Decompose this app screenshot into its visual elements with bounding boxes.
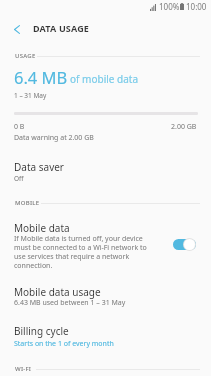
staticText: Data saver [14, 160, 64, 174]
staticText: Data warning at 2.00 GB [14, 133, 94, 143]
staticText: 100% [159, 1, 180, 12]
button[interactable]: Mobile data [0, 216, 211, 272]
button[interactable]: Navigate up [4, 15, 29, 43]
staticText: WI-FI [15, 365, 32, 373]
staticText: 10:00 [186, 1, 207, 12]
staticText: DATA USAGE [33, 22, 90, 34]
button[interactable]: Billing cycle [0, 322, 211, 350]
staticText: Mobile data usage [14, 285, 101, 299]
staticText: Billing cycle [14, 324, 69, 338]
staticText: Mobile data [14, 221, 70, 235]
button[interactable]: Data saver [0, 156, 211, 186]
staticText: 6.4 MB [14, 66, 68, 88]
button[interactable]: Mobile data usage [0, 283, 211, 311]
staticText: 6.43 MB used between 1 – 31 May [14, 298, 126, 308]
staticText: Starts on the 1 of every month [14, 339, 114, 349]
staticText: 0 B [14, 122, 25, 132]
staticText: of mobile data [70, 72, 139, 86]
staticText: If Mobile data is turned off, your devic… [14, 234, 151, 270]
staticText: USAGE [15, 52, 36, 60]
staticText: 2.00 GB [171, 122, 197, 132]
staticText: Off [14, 174, 24, 183]
staticText: 1 – 31 May [14, 91, 47, 100]
staticText: MOBILE [15, 199, 40, 207]
